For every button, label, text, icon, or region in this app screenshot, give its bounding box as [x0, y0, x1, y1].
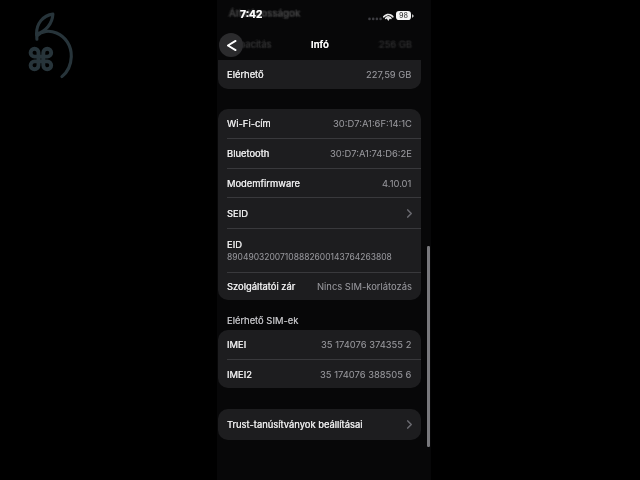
button[interactable]: Trust-tanúsítványok beállításai: [218, 409, 421, 440]
button[interactable]: Szolgáltatói zár: [218, 273, 421, 300]
staticText: EID: [227, 239, 242, 250]
staticText: 227,59 GB: [366, 69, 412, 80]
staticText: Kapacitás: [228, 38, 272, 49]
staticText: Modemfirmware: [227, 178, 301, 189]
staticText: Általánosságok: [228, 8, 300, 20]
staticText: Kapacitás: [226, 39, 270, 50]
staticText: Kapacitás: [227, 39, 271, 50]
staticText: Bluetooth: [227, 148, 270, 159]
staticText: Kapacitás: [229, 39, 273, 50]
staticText: 256 GB: [379, 40, 413, 51]
button[interactable]: Wi-Fi-cím: [218, 109, 421, 138]
staticText: 256 GB: [379, 38, 413, 49]
staticText: SEID: [227, 208, 248, 219]
staticText: Kapacitás: [228, 39, 272, 50]
staticText: Kapacitás: [227, 38, 271, 49]
staticText: Általánosságok: [229, 9, 301, 21]
staticText: 30:D7:A1:6F:14:1C: [333, 118, 412, 129]
staticText: 35 174076 374355 2: [321, 339, 412, 350]
staticText: 256 GB: [379, 39, 413, 50]
staticText: Nincs SIM-korlátozás: [317, 281, 412, 292]
staticText: Elérhető: [227, 69, 264, 80]
staticText: Szolgáltatói zár: [227, 281, 296, 292]
staticText: Kapacitás: [228, 40, 272, 51]
button[interactable]: IMEI2: [218, 360, 421, 388]
staticText: Elérhető SIM-ek: [227, 315, 299, 326]
button[interactable]: SEID: [218, 198, 421, 228]
staticText: 4.10.01: [382, 178, 412, 189]
button[interactable]: Modemfirmware: [218, 169, 421, 197]
button[interactable]: IMEI: [218, 330, 421, 359]
staticText: 7:42: [240, 8, 263, 20]
staticText: Wi-Fi-cím: [227, 118, 271, 129]
staticText: Kapacitás: [228, 38, 272, 49]
staticText: 89049032007108882600143764263808: [227, 252, 392, 262]
staticText: 256 GB: [377, 39, 411, 50]
staticText: Általánosságok: [230, 8, 302, 20]
staticText: Általánosságok: [229, 8, 301, 20]
staticText: Trust-tanúsítványok beállításai: [227, 419, 363, 430]
button[interactable]: Bluetooth: [218, 139, 421, 168]
staticText: Infó: [311, 39, 329, 51]
staticText: IMEI: [227, 339, 247, 350]
staticText: Általánosságok: [229, 7, 301, 19]
staticText: 256 GB: [380, 39, 414, 50]
staticText: Kapacitás: [228, 39, 272, 50]
button[interactable]: EID: [218, 229, 421, 272]
staticText: Általánosságok: [228, 7, 300, 19]
staticText: 98: [399, 11, 409, 20]
button[interactable]: Back: [219, 33, 243, 57]
staticText: 30:D7:A1:74:D6:2E: [330, 148, 412, 159]
staticText: 256 GB: [378, 39, 412, 50]
staticText: Általánosságok: [229, 8, 301, 20]
staticText: Általánosságok: [227, 8, 299, 20]
staticText: 256 GB: [378, 38, 412, 49]
staticText: 256 GB: [379, 39, 413, 50]
staticText: IMEI2: [227, 369, 252, 380]
staticText: 35 174076 388505 6: [320, 369, 412, 380]
staticText: Általánosságok: [229, 7, 301, 19]
staticText: 256 GB: [379, 38, 413, 49]
button[interactable]: Elérhető: [218, 60, 421, 89]
